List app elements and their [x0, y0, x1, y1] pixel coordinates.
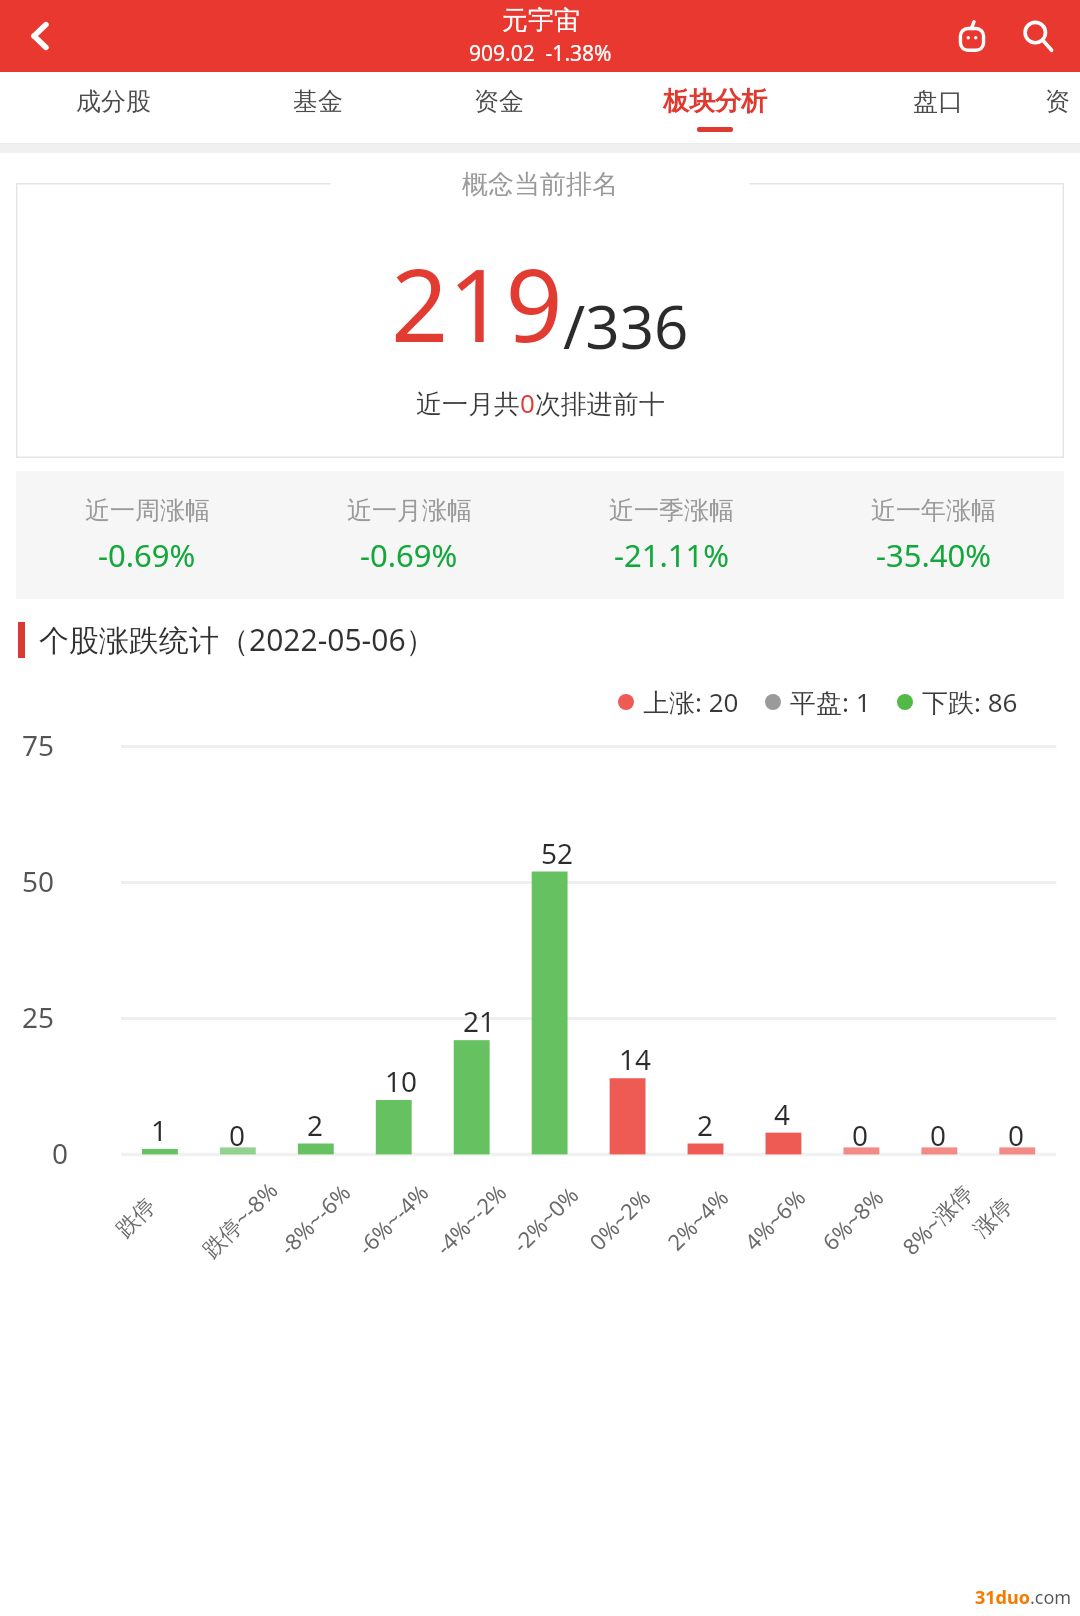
- staticText: 板块分析: [663, 85, 767, 118]
- staticText: 2: [697, 1106, 714, 1144]
- staticText: 近一月共0次排进前十: [416, 385, 665, 421]
- button[interactable]: Assistant robot: [944, 8, 1000, 64]
- button[interactable]: 板块分析: [589, 72, 841, 144]
- staticText: 近一季涨幅: [609, 495, 734, 526]
- button[interactable]: Back: [12, 8, 68, 64]
- staticText: -6%~-4%: [350, 1177, 434, 1261]
- staticText: 31duo.com: [975, 1585, 1072, 1610]
- staticText: 6%~8%: [815, 1182, 890, 1256]
- staticText: 0: [1008, 1116, 1025, 1154]
- staticText: -0.69%: [360, 534, 458, 576]
- button[interactable]: 资: [1034, 72, 1080, 144]
- staticText: -4%~-2%: [428, 1177, 512, 1261]
- staticText: 21: [463, 1002, 496, 1040]
- staticText: 4: [774, 1095, 791, 1133]
- staticText: 0: [52, 1134, 69, 1172]
- button[interactable]: Search: [1010, 8, 1066, 64]
- staticText: /336: [563, 285, 689, 367]
- staticText: 8%~涨停: [895, 1177, 979, 1261]
- staticText: -8%~-6%: [272, 1177, 356, 1261]
- staticText: 10: [385, 1062, 418, 1100]
- staticText: 75: [22, 726, 55, 764]
- staticText: 下跌: 86: [922, 684, 1018, 720]
- staticText: 25: [22, 998, 55, 1036]
- staticText: 跌停: [110, 1192, 161, 1243]
- staticText: -35.40%: [876, 534, 991, 576]
- staticText: 0: [852, 1116, 869, 1154]
- button[interactable]: 资金: [408, 72, 589, 144]
- button[interactable]: 成分股: [0, 72, 227, 144]
- staticText: 平盘: 1: [790, 684, 871, 720]
- staticText: 基金: [293, 86, 343, 117]
- staticText: -21.11%: [614, 534, 729, 576]
- staticText: 近一月涨幅: [347, 495, 472, 526]
- staticText: 2: [307, 1106, 324, 1144]
- staticText: 上涨: 20: [643, 684, 739, 720]
- button[interactable]: 盘口: [841, 72, 1034, 144]
- staticText: 近一年涨幅: [871, 495, 996, 526]
- staticText: 0%~2%: [582, 1182, 657, 1256]
- staticText: 盘口: [913, 86, 963, 117]
- staticText: 概念当前排名: [462, 168, 618, 201]
- staticText: 元宇宙: [502, 4, 580, 37]
- staticText: 近一周涨幅: [85, 495, 210, 526]
- staticText: 14: [619, 1040, 652, 1078]
- staticText: 52: [541, 834, 574, 872]
- staticText: 1: [151, 1111, 168, 1149]
- staticText: 909.02 -1.38%: [469, 39, 612, 68]
- staticText: 个股涨跌统计（2022-05-06）: [39, 619, 436, 660]
- staticText: 涨停: [967, 1192, 1018, 1243]
- staticText: 资: [1045, 86, 1070, 117]
- staticText: 0: [229, 1116, 246, 1154]
- staticText: -2%~0%: [505, 1179, 585, 1259]
- staticText: -0.69%: [98, 534, 196, 576]
- staticText: 219: [391, 235, 563, 371]
- button[interactable]: 基金: [227, 72, 408, 144]
- staticText: 跌停~-8%: [195, 1175, 284, 1263]
- staticText: 0: [930, 1116, 947, 1154]
- staticText: 50: [22, 862, 55, 900]
- staticText: 4%~6%: [737, 1182, 812, 1256]
- staticText: 成分股: [76, 86, 151, 117]
- staticText: 资金: [474, 86, 524, 117]
- staticText: 2%~4%: [660, 1182, 735, 1256]
